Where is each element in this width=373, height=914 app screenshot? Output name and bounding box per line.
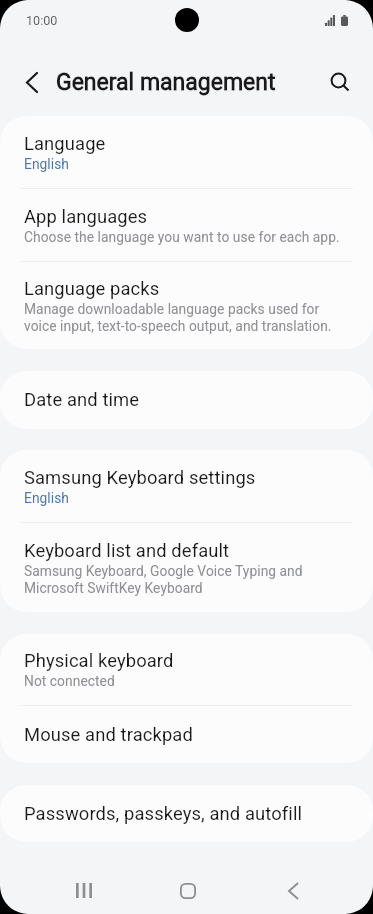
staticText: Date and time xyxy=(24,389,140,411)
staticText: Samsung Keyboard settings xyxy=(24,467,256,489)
staticText: English xyxy=(24,156,69,172)
button[interactable]: Physical keyboard xyxy=(0,634,373,705)
button[interactable]: Language xyxy=(0,116,373,188)
button[interactable]: Passwords, passkeys, and autofill xyxy=(0,785,373,842)
staticText: Choose the language you want to use for … xyxy=(24,229,340,245)
button[interactable]: Navigate up xyxy=(10,60,54,104)
staticText: Manage downloadable language packs used … xyxy=(24,301,352,334)
staticText: Language packs xyxy=(24,278,160,300)
staticText: Physical keyboard xyxy=(24,650,174,672)
button[interactable]: Keyboard list and default xyxy=(0,523,373,612)
staticText: English xyxy=(24,490,69,506)
button[interactable]: Samsung Keyboard settings xyxy=(0,450,373,522)
button[interactable]: Mouse and trackpad xyxy=(0,706,373,763)
staticText: General management xyxy=(56,69,276,96)
button[interactable]: App languages xyxy=(0,189,373,261)
staticText: 10:00 xyxy=(26,13,58,28)
staticText: Keyboard list and default xyxy=(24,540,230,562)
staticText: Mouse and trackpad xyxy=(24,724,193,746)
staticText: App languages xyxy=(24,206,148,228)
button[interactable]: Search xyxy=(318,60,362,104)
button[interactable]: Recent apps xyxy=(60,867,107,914)
staticText: Passwords, passkeys, and autofill xyxy=(24,803,303,825)
staticText: Language xyxy=(24,133,106,155)
staticText: Not connected xyxy=(24,673,115,689)
button[interactable]: Language packs xyxy=(0,262,373,349)
button[interactable]: Back xyxy=(270,867,317,914)
staticText: Samsung Keyboard, Google Voice Typing an… xyxy=(24,563,352,596)
button[interactable]: Home xyxy=(164,867,211,914)
button[interactable]: Date and time xyxy=(0,371,373,429)
